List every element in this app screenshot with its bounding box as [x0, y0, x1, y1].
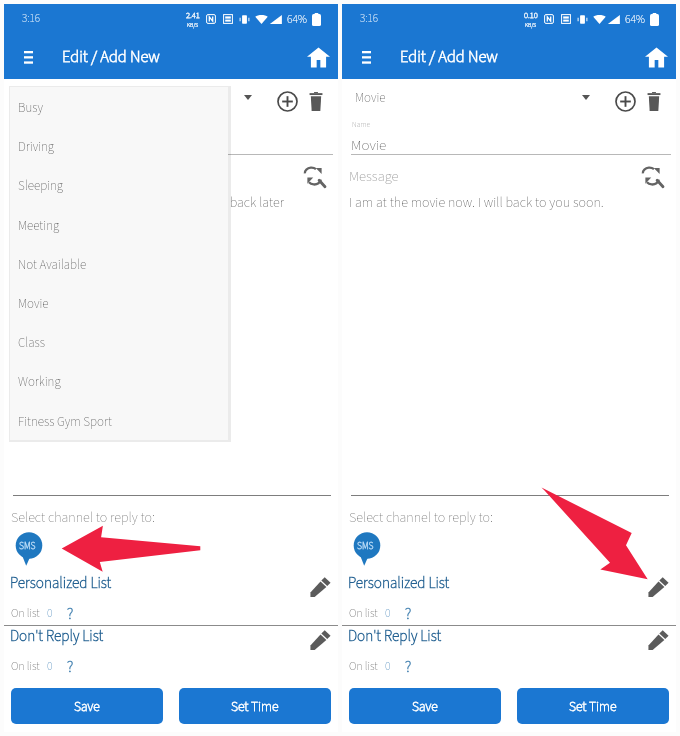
staticText: Movie	[18, 295, 49, 314]
button[interactable]: Help	[63, 656, 77, 676]
staticText: 0	[385, 605, 391, 621]
button[interactable]: Edit Personalized List	[642, 570, 674, 602]
button[interactable]: Edit Don't Reply List	[304, 623, 336, 655]
button[interactable]: Edit Personalized List	[304, 570, 336, 602]
staticText: SMS	[19, 539, 36, 553]
button[interactable]: Help	[401, 603, 415, 623]
staticText: I am at the movie now. I will back to yo…	[349, 193, 604, 213]
button[interactable]: SMS channel	[15, 532, 43, 566]
staticText: ?	[405, 603, 412, 623]
button[interactable]: Home	[640, 41, 672, 73]
staticText: Select channel to reply to:	[11, 508, 155, 528]
button[interactable]: Add	[270, 84, 305, 119]
button[interactable]: Home	[302, 41, 334, 73]
button[interactable]: Don't Reply List	[10, 625, 104, 647]
staticText: Working	[18, 373, 61, 392]
button[interactable]: Set Time	[179, 688, 331, 724]
staticText: Select channel to reply to:	[349, 508, 493, 528]
staticText: I am busy at the moment. I will call you…	[11, 193, 285, 213]
button[interactable]: Regenerate message	[635, 159, 669, 193]
staticText: Set Time	[569, 697, 617, 716]
button[interactable]: Save	[11, 688, 163, 724]
staticText: On list	[349, 605, 378, 621]
staticText: 0	[385, 658, 391, 674]
button[interactable]: Menu	[350, 41, 382, 73]
button[interactable]: Menu	[12, 41, 44, 73]
staticText: Message	[349, 166, 399, 187]
staticText: SMS	[357, 539, 374, 553]
staticText: ?	[405, 656, 412, 676]
staticText: Message	[11, 166, 61, 187]
button[interactable]: Help	[401, 656, 415, 676]
staticText: On list	[11, 658, 40, 674]
button[interactable]: Delete	[636, 84, 671, 119]
staticText: Save	[412, 697, 438, 716]
staticText: ?	[67, 603, 74, 623]
staticText: 64%	[287, 11, 308, 27]
staticText: Movie	[351, 135, 387, 156]
staticText: Sleeping	[18, 177, 64, 196]
staticText: Driving	[18, 138, 55, 157]
staticText: Busy	[13, 135, 42, 156]
staticText: Not Available	[18, 256, 87, 275]
button[interactable]: Save	[349, 688, 501, 724]
staticText: Name	[352, 119, 371, 130]
staticText: Busy	[18, 99, 43, 118]
staticText: Set Time	[231, 697, 279, 716]
staticText: Edit / Add New	[62, 45, 160, 68]
button[interactable]: Edit Don't Reply List	[642, 623, 674, 655]
button[interactable]: Regenerate message	[297, 159, 331, 193]
button[interactable]: Help	[63, 603, 77, 623]
button[interactable]: Personalized List	[10, 572, 112, 594]
button[interactable]: Delete	[298, 84, 333, 119]
button[interactable]: Add	[608, 84, 643, 119]
staticText: Class	[18, 334, 46, 353]
button[interactable]: SMS channel	[353, 532, 381, 566]
staticText: 3:16	[22, 11, 40, 27]
staticText: 0	[47, 658, 53, 674]
staticText: On list	[11, 605, 40, 621]
staticText: 3:16	[360, 11, 378, 27]
button[interactable]: Movie	[348, 84, 588, 116]
staticText: Save	[74, 697, 100, 716]
staticText: ?	[67, 656, 74, 676]
staticText: Meeting	[18, 217, 60, 236]
staticText: Movie	[355, 89, 386, 108]
staticText: Fitness Gym Sport	[18, 413, 112, 432]
button[interactable]: Personalized List	[348, 572, 450, 594]
button[interactable]: Don't Reply List	[348, 625, 442, 647]
staticText: On list	[349, 658, 378, 674]
staticText: Busy	[17, 89, 42, 108]
staticText: KB/S	[187, 21, 199, 29]
staticText: 0.10	[524, 9, 538, 21]
staticText: 64%	[625, 11, 646, 27]
button[interactable]: Set Time	[517, 688, 669, 724]
staticText: Edit / Add New	[400, 45, 498, 68]
staticText: 2.41	[186, 9, 200, 21]
staticText: 0	[47, 605, 53, 621]
staticText: KB/S	[525, 21, 537, 29]
button[interactable]: Busy	[10, 84, 250, 116]
